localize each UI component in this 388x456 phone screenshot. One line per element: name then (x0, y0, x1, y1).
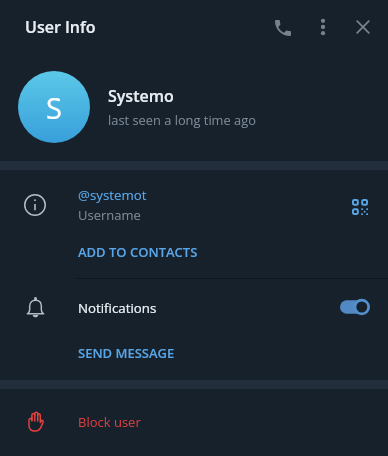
button[interactable]: Notifications (0, 279, 388, 331)
button[interactable]: Close (343, 0, 383, 56)
button[interactable]: S (0, 56, 388, 161)
staticText: ADD TO CONTACTS (78, 243, 198, 261)
button[interactable]: Call (263, 0, 303, 56)
staticText: User Info (25, 16, 96, 38)
staticText: SEND MESSAGE (78, 344, 175, 362)
button[interactable]: Show QR code (343, 190, 376, 223)
staticText: last seen a long time ago (108, 111, 256, 128)
staticText: Block user (78, 413, 141, 431)
staticText: S (46, 88, 62, 127)
button[interactable]: Block user (0, 389, 388, 445)
staticText: @systemot (78, 186, 147, 204)
staticText: Username (78, 206, 141, 224)
button[interactable]: More options (303, 0, 343, 56)
staticText: Notifications (78, 299, 157, 317)
staticText: Systemo (108, 85, 174, 107)
button[interactable]: ADD TO CONTACTS (0, 236, 388, 278)
button[interactable]: SEND MESSAGE (0, 338, 388, 380)
button[interactable]: @systemot (0, 170, 388, 226)
